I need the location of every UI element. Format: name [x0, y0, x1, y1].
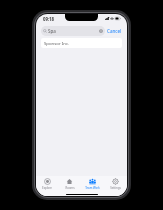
staticText: Explore — [42, 186, 52, 190]
staticText: Rooms — [65, 186, 75, 190]
button[interactable]: Explore — [36, 176, 58, 192]
staticText: Settings — [110, 186, 121, 190]
button[interactable]: Team Work — [81, 176, 104, 192]
staticText: 09:18 — [43, 16, 55, 22]
button[interactable]: Settings — [104, 176, 127, 192]
staticText: Sponsor Inc. — [44, 40, 70, 46]
staticText: Team Work — [85, 186, 100, 190]
button[interactable]: Spa — [41, 26, 105, 36]
button[interactable]: Clear search — [99, 29, 103, 33]
button[interactable]: Cancel — [107, 26, 122, 36]
button[interactable]: Rooms — [58, 176, 81, 192]
staticText: Spa — [48, 28, 56, 34]
staticText: Cancel — [107, 28, 122, 34]
button[interactable]: Sponsor Inc. — [41, 38, 122, 48]
